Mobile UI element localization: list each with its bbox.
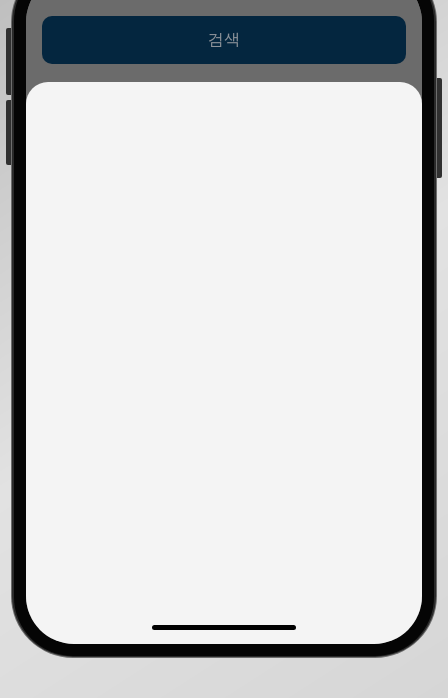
other: Home indicator — [152, 625, 296, 630]
button[interactable]: 검색 — [42, 16, 406, 64]
staticText: 검색 — [208, 30, 240, 50]
